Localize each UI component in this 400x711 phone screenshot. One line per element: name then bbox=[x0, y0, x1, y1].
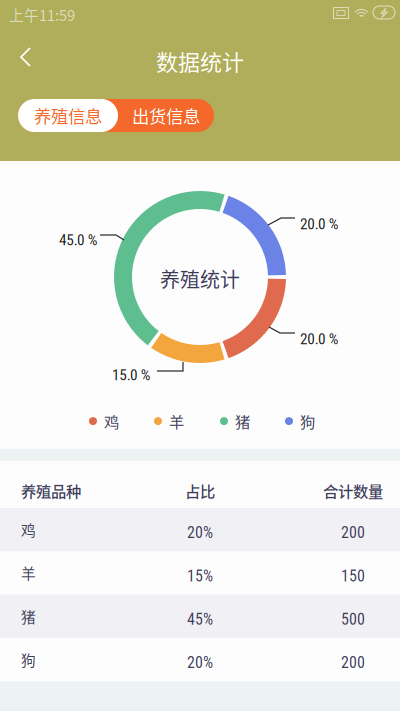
staticText: 15.0 % bbox=[112, 366, 151, 384]
staticText: 养殖统计 bbox=[160, 264, 240, 293]
staticText: 上午11:59 bbox=[9, 4, 75, 25]
staticText: 猪 bbox=[235, 410, 250, 432]
staticText: 鸡 bbox=[21, 519, 36, 540]
staticText: 45% bbox=[187, 610, 213, 629]
staticText: 占比 bbox=[185, 479, 215, 502]
staticText: 20% bbox=[187, 653, 213, 672]
staticText: 狗 bbox=[21, 649, 36, 670]
staticText: 合计数量 bbox=[323, 479, 383, 502]
staticText: 20% bbox=[187, 523, 213, 542]
button[interactable]: 养殖信息 bbox=[18, 99, 118, 132]
staticText: 猪 bbox=[21, 606, 36, 627]
button[interactable]: Back bbox=[9, 38, 47, 76]
staticText: 狗 bbox=[300, 410, 315, 432]
staticText: 15% bbox=[187, 567, 213, 585]
staticText: 羊 bbox=[21, 562, 36, 583]
staticText: 20.0 % bbox=[300, 215, 339, 233]
staticText: 200 bbox=[341, 653, 365, 672]
button[interactable]: 出货信息 bbox=[118, 99, 214, 132]
staticText: 45.0 % bbox=[59, 231, 98, 249]
staticText: 养殖信息 bbox=[34, 103, 102, 128]
staticText: 鸡 bbox=[104, 410, 119, 432]
staticText: 500 bbox=[341, 610, 365, 629]
staticText: 羊 bbox=[169, 410, 184, 432]
staticText: 20.0 % bbox=[300, 330, 339, 348]
staticText: 出货信息 bbox=[132, 103, 200, 128]
staticText: 数据统计 bbox=[156, 45, 244, 77]
staticText: 150 bbox=[341, 567, 365, 585]
staticText: 养殖品种 bbox=[21, 479, 81, 502]
staticText: 200 bbox=[341, 523, 365, 542]
